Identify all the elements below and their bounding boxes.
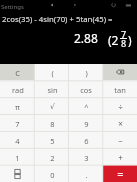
staticText: × — [118, 118, 123, 129]
button[interactable]: tan — [103, 80, 137, 97]
staticText: 0 — [50, 170, 55, 180]
staticText: 8 — [50, 119, 55, 129]
button[interactable]: 9 — [69, 114, 103, 131]
button[interactable]: C — [0, 64, 35, 80]
button[interactable]: Backspace — [103, 64, 137, 80]
staticText: √ — [50, 102, 55, 111]
button[interactable]: 1 — [0, 148, 35, 165]
staticText: 1 — [15, 153, 20, 163]
staticText: 3 — [84, 153, 89, 163]
button[interactable]: × — [103, 114, 137, 131]
staticText: ) — [128, 32, 132, 48]
staticText: 4 — [15, 136, 20, 146]
button[interactable]: . — [69, 165, 103, 182]
button[interactable]: √ — [35, 97, 69, 114]
button[interactable]: π — [0, 97, 35, 114]
button[interactable]: 3 — [69, 148, 103, 165]
button[interactable]: 4 — [0, 131, 35, 148]
button[interactable]: cos — [69, 80, 103, 97]
staticText: π — [15, 102, 20, 112]
staticText: C — [15, 68, 20, 78]
button[interactable]: rad — [0, 80, 35, 97]
button[interactable]: 2 — [35, 148, 69, 165]
staticText: sin — [47, 85, 58, 95]
staticText: 8 — [121, 37, 127, 49]
button[interactable]: = — [103, 165, 137, 182]
staticText: 9 — [84, 119, 89, 129]
button[interactable]: ( — [35, 64, 69, 80]
staticText: 2cos(35) - 4sin(70) + 5tan(45) = — [2, 14, 113, 25]
staticText: − — [118, 135, 123, 146]
staticText: tan — [114, 85, 126, 95]
staticText: ) — [85, 68, 88, 78]
staticText: . — [85, 170, 88, 180]
staticText: ÷ — [118, 101, 123, 112]
staticText: ^ — [84, 102, 89, 112]
button[interactable]: + — [103, 148, 137, 165]
staticText: 7 — [121, 28, 127, 40]
staticText: + — [118, 152, 123, 163]
staticText: 5 — [50, 136, 55, 146]
button[interactable]: 0 — [35, 165, 69, 182]
staticText: rad — [12, 85, 24, 95]
staticText: ( — [51, 68, 54, 78]
staticText: 7 — [15, 119, 20, 129]
button[interactable]: Fraction — [0, 165, 35, 182]
button[interactable]: sin — [35, 80, 69, 97]
button[interactable]: ^ — [69, 97, 103, 114]
button[interactable]: 7 — [0, 114, 35, 131]
button[interactable]: 5 — [35, 131, 69, 148]
staticText: 6 — [84, 136, 89, 146]
button[interactable]: ) — [69, 64, 103, 80]
button[interactable]: ÷ — [103, 97, 137, 114]
staticText: cos — [80, 85, 92, 95]
button[interactable]: 6 — [69, 131, 103, 148]
staticText: 2 — [50, 153, 55, 163]
staticText: = — [117, 166, 124, 181]
button[interactable]: − — [103, 131, 137, 148]
button[interactable]: Settings — [1, 3, 24, 11]
staticText: 2.88 — [74, 30, 98, 46]
button[interactable]: 8 — [35, 114, 69, 131]
staticText: (2 — [108, 32, 119, 48]
